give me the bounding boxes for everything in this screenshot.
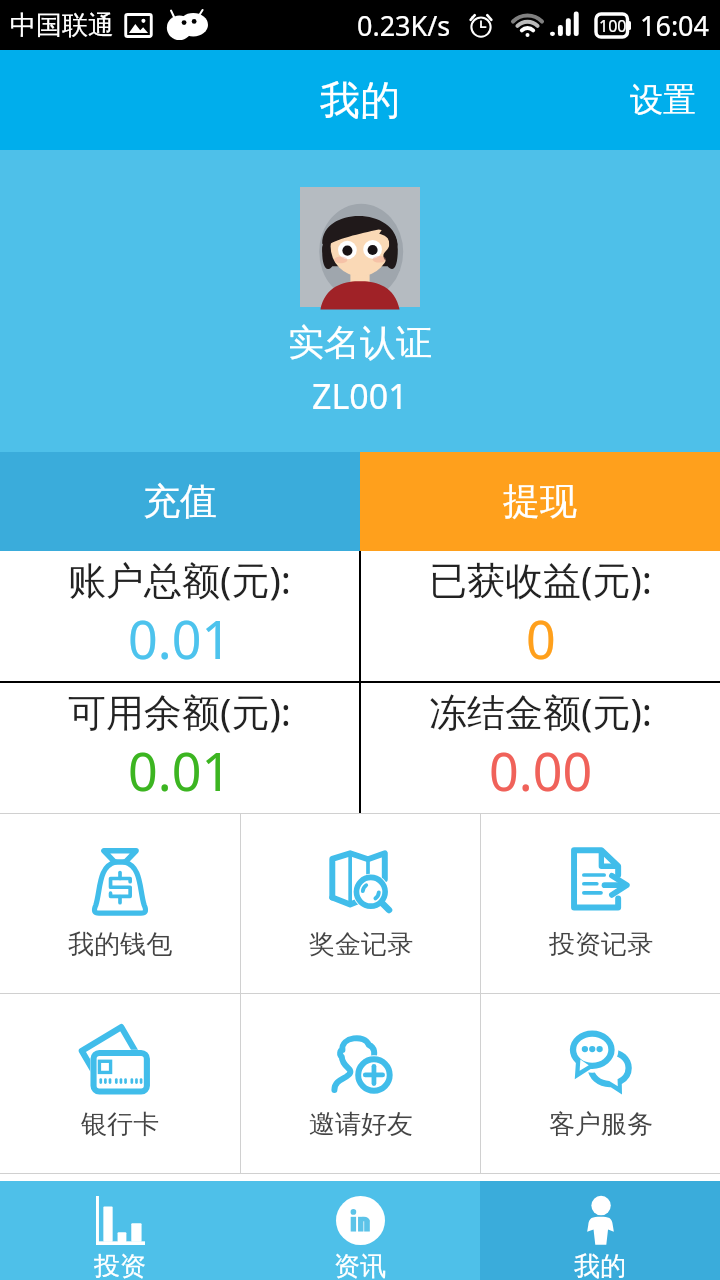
staticText: 0.01 [128, 735, 232, 806]
button[interactable]: 提现 [360, 452, 720, 551]
staticText: 邀请好友 [309, 1108, 413, 1141]
staticText: 0.23K/s [357, 7, 451, 44]
button[interactable]: 我的钱包 [0, 814, 240, 993]
button[interactable]: 设置 [606, 55, 720, 145]
staticText: 银行卡 [81, 1108, 159, 1141]
button[interactable]: 客户服务 [481, 994, 720, 1173]
staticText: 资讯 [334, 1250, 386, 1280]
button[interactable]: 投资记录 [481, 814, 720, 993]
staticText: 我的 [574, 1250, 626, 1280]
staticText: 充值 [143, 478, 217, 525]
button[interactable]: 投资 [0, 1181, 240, 1280]
button[interactable]: 奖金记录 [241, 814, 480, 993]
staticText: 实名认证 [288, 320, 432, 365]
button[interactable]: 我的 [480, 1181, 720, 1280]
staticText: 0.00 [489, 735, 593, 806]
staticText: 投资记录 [549, 928, 653, 961]
staticText: ZL001 [312, 373, 408, 419]
button[interactable]: 银行卡 [0, 994, 240, 1173]
staticText: 奖金记录 [309, 928, 413, 961]
staticText: 冻结金额(元): [429, 685, 652, 737]
staticText: 0.01 [128, 603, 232, 674]
button[interactable]: 充值 [0, 452, 360, 551]
staticText: 中国联通 [10, 9, 114, 42]
staticText: 账户总额(元): [68, 553, 291, 605]
staticText: 我的钱包 [68, 928, 172, 961]
staticText: 已获收益(元): [429, 553, 652, 605]
staticText: 16:04 [640, 7, 710, 44]
staticText: 100 [599, 15, 627, 37]
staticText: 0 [526, 603, 556, 674]
staticText: 设置 [630, 79, 696, 121]
staticText: 提现 [503, 478, 577, 525]
button[interactable]: 邀请好友 [241, 994, 480, 1173]
staticText: 我的 [320, 75, 400, 125]
staticText: 可用余额(元): [68, 685, 291, 737]
button[interactable]: Avatar [300, 187, 420, 307]
staticText: 投资 [94, 1250, 146, 1280]
staticText: 客户服务 [549, 1108, 653, 1141]
button[interactable]: 资讯 [240, 1181, 480, 1280]
